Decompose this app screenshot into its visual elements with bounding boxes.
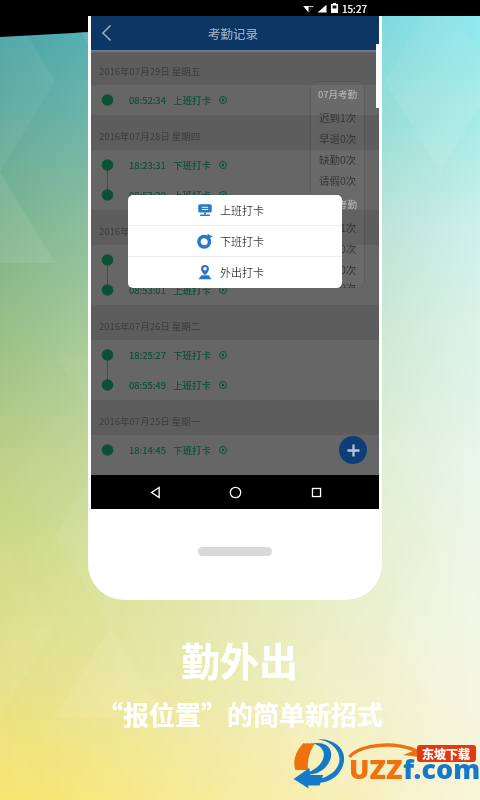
button[interactable]: 18:23:31 xyxy=(91,150,379,180)
button[interactable]: 07月考勤 xyxy=(310,81,365,288)
staticText: 07月考勤 xyxy=(318,197,358,211)
staticText: 上班打卡 xyxy=(173,283,212,297)
staticText: 勤外出 xyxy=(181,631,299,683)
staticText: 迟到1次 xyxy=(319,220,357,235)
staticText: 15:27 xyxy=(342,1,367,15)
button[interactable]: 08:53:01 xyxy=(91,275,379,305)
staticText: 08:52:29 xyxy=(129,188,166,202)
staticText: 上班打卡 xyxy=(173,93,212,107)
staticText: 东坡下载 xyxy=(422,745,471,762)
staticText: f.com xyxy=(403,750,480,787)
staticText: 08:53:01 xyxy=(129,283,166,297)
button[interactable]: 上班打卡 xyxy=(128,195,342,225)
staticText: 外出打卡 xyxy=(220,264,264,280)
staticText: 下班打卡 xyxy=(173,253,212,267)
staticText: 2016年07月25日 星期一 xyxy=(99,414,201,428)
button[interactable]: 下班打卡 xyxy=(128,226,342,256)
staticText: 下班打卡 xyxy=(173,443,212,457)
staticText: 请假0次 xyxy=(319,173,357,188)
staticText: 考勤记录 xyxy=(208,24,259,42)
staticText: 07月考勤 xyxy=(318,87,358,101)
staticText: 迟到1次 xyxy=(319,110,357,125)
staticText: 上班打卡 xyxy=(173,378,212,392)
button[interactable]: Home xyxy=(218,475,252,509)
staticText: 缺勤0次 xyxy=(319,262,357,277)
button[interactable]: 外出打卡 xyxy=(128,257,342,287)
button[interactable]: 18:25:27 xyxy=(91,340,379,370)
staticText: 早退0次 xyxy=(319,131,357,146)
button[interactable]: 08:52:29 xyxy=(91,180,379,210)
staticText: 08:52:34 xyxy=(129,93,166,107)
button[interactable]: Add xyxy=(339,436,367,464)
button[interactable]: 08:55:49 xyxy=(91,370,379,400)
staticText: 早退0次 xyxy=(319,241,357,256)
staticText: “报位置”的简单新招式 xyxy=(97,695,384,733)
staticText: 下班打卡 xyxy=(173,348,212,362)
button[interactable]: 18:20:11 xyxy=(91,245,379,275)
button[interactable]: Recents xyxy=(299,475,333,509)
staticText: UZZ xyxy=(349,750,403,787)
staticText: 18:25:27 xyxy=(129,348,166,362)
button[interactable]: Back xyxy=(91,16,121,50)
staticText: 08:55:49 xyxy=(129,378,166,392)
staticText: 下班打卡 xyxy=(220,233,264,249)
staticText: 2016年07月27日 星期三 xyxy=(99,224,201,238)
button[interactable]: 18:14:45 xyxy=(91,435,379,465)
staticText: 18:14:45 xyxy=(129,443,166,457)
staticText: 18:20:11 xyxy=(129,253,166,267)
staticText: 2016年07月26日 星期二 xyxy=(99,319,201,333)
button[interactable]: Back xyxy=(138,475,172,509)
staticText: 请假0次 xyxy=(319,280,357,288)
staticText: 18:23:31 xyxy=(129,158,166,172)
staticText: 上班打卡 xyxy=(173,188,212,202)
staticText: 2016年07月29日 星期五 xyxy=(99,64,201,78)
staticText: 缺勤0次 xyxy=(319,152,357,167)
button[interactable]: 08:52:34 xyxy=(91,85,379,115)
staticText: 上班打卡 xyxy=(220,202,264,218)
staticText: 下班打卡 xyxy=(173,158,212,172)
staticText: 2016年07月28日 星期四 xyxy=(99,129,201,143)
